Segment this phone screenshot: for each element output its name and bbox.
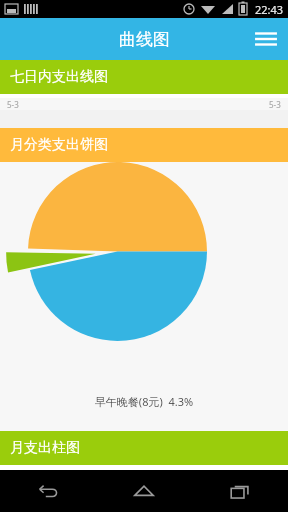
staticText: 七日内支出线图 [10, 68, 108, 86]
staticText: 曲线图 [119, 29, 170, 50]
staticText: 22:43 [255, 2, 284, 17]
staticText: 月分类支出饼图 [10, 136, 108, 154]
button[interactable]: Menu [251, 24, 281, 54]
staticText: 月支出柱图 [10, 439, 80, 457]
staticText: 早午晚餐(8元) 4.3% [0, 394, 288, 409]
button[interactable]: Back [0, 470, 96, 512]
button[interactable]: Home [96, 470, 192, 512]
button[interactable]: Recent apps [192, 470, 288, 512]
staticText: 5-3 [7, 99, 19, 110]
button[interactable]: 月分类支出饼图 [0, 128, 288, 162]
button[interactable]: 月支出柱图 [0, 431, 288, 465]
button[interactable]: 七日内支出线图 [0, 60, 288, 94]
staticText: 5-3 [269, 99, 281, 110]
